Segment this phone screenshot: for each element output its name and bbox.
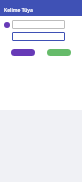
staticText: Kelime Tüya xyxy=(4,7,33,14)
